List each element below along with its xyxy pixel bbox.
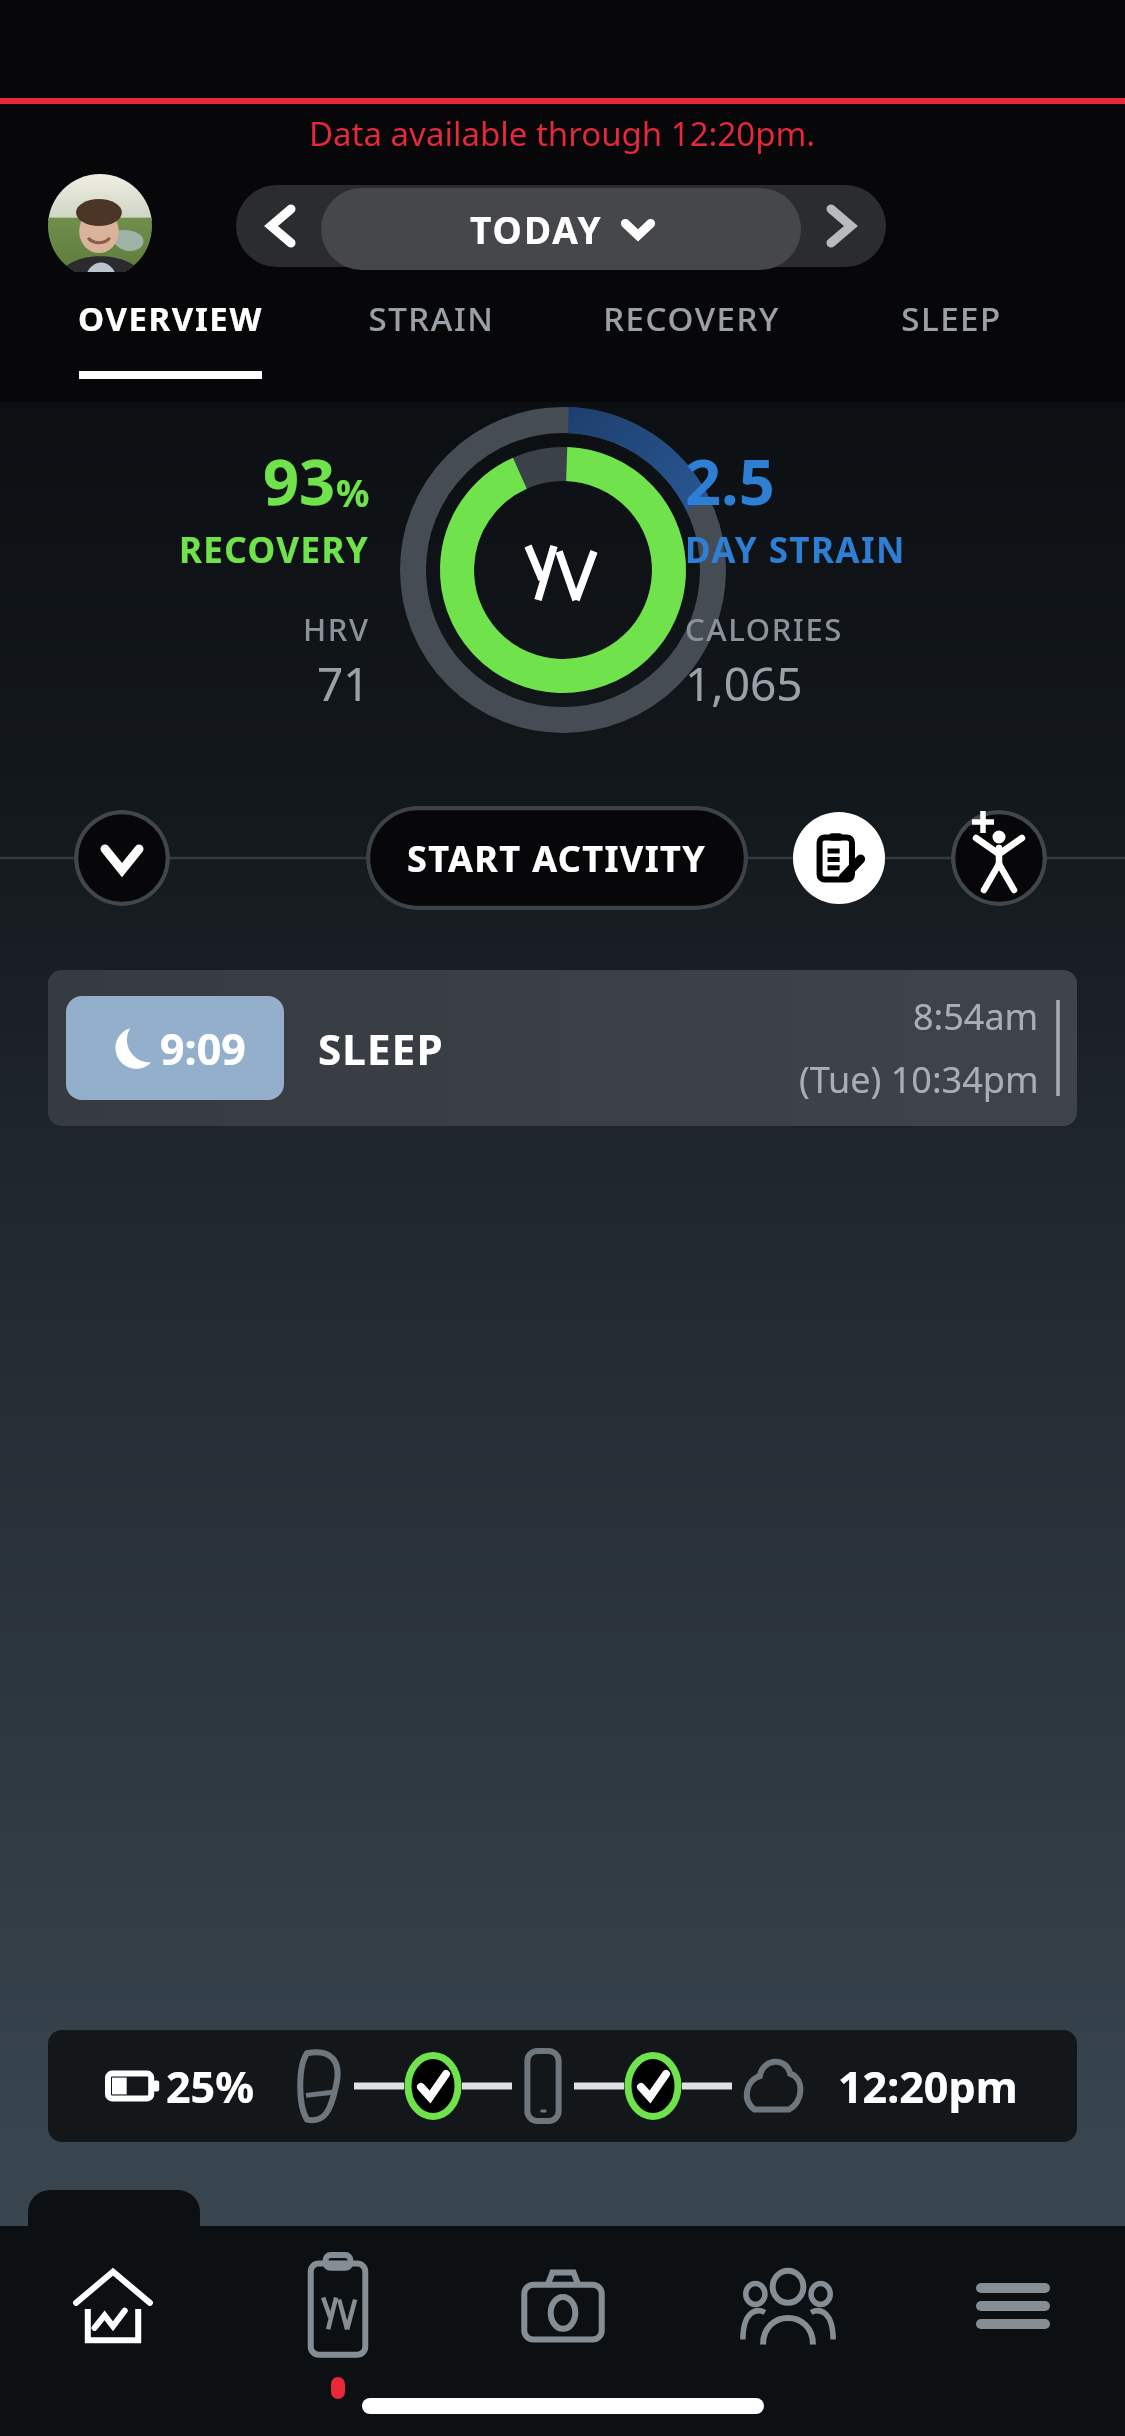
button[interactable]: 2.5 — [685, 438, 1065, 715]
staticText: % — [336, 467, 370, 517]
button[interactable]: 25% — [48, 2030, 1077, 2142]
button[interactable]: RECOVERY — [551, 272, 831, 402]
staticText: OVERVIEW — [78, 296, 263, 341]
staticText: RECOVERY — [179, 526, 370, 574]
button[interactable]: Home — [0, 2226, 225, 2386]
button[interactable]: 9:09 — [48, 970, 1077, 1126]
staticText: 9:09 — [160, 1019, 246, 1078]
button[interactable]: Next day — [796, 185, 886, 267]
button[interactable]: Add activity — [951, 810, 1047, 906]
staticText: 25% — [166, 2057, 254, 2116]
button[interactable]: Journal — [225, 2226, 450, 2386]
button[interactable]: Profile — [48, 174, 152, 278]
staticText: START ACTIVITY — [407, 834, 707, 883]
button[interactable]: OVERVIEW — [30, 272, 310, 402]
staticText: Data available through 12:20pm. — [309, 111, 816, 156]
button[interactable]: 93 — [0, 438, 370, 715]
staticText: 93 — [263, 438, 336, 524]
staticText: TODAY — [470, 204, 603, 254]
staticText: 1,065 — [685, 652, 803, 715]
button[interactable]: Journal — [793, 812, 885, 904]
button[interactable]: TODAY — [321, 188, 801, 270]
staticText: SLEEP — [901, 296, 1002, 341]
staticText: 8:54am — [913, 992, 1039, 1041]
staticText: (Tue) 10:34pm — [799, 1055, 1039, 1104]
staticText: RECOVERY — [603, 296, 780, 341]
staticText: SLEEP — [318, 1020, 444, 1077]
button[interactable]: Previous day — [236, 185, 326, 267]
button[interactable]: START ACTIVITY — [366, 806, 748, 910]
staticText: 2.5 — [685, 438, 775, 524]
button[interactable]: Teams — [675, 2226, 900, 2386]
button[interactable]: Menu — [900, 2226, 1125, 2386]
staticText: STRAIN — [368, 296, 495, 341]
button[interactable]: Recovery and strain gauge — [398, 405, 728, 735]
staticText: DAY STRAIN — [685, 526, 906, 574]
button[interactable]: STRAIN — [291, 272, 571, 402]
button[interactable]: Expand — [74, 810, 170, 906]
button[interactable]: Camera — [450, 2226, 675, 2386]
button[interactable]: SLEEP — [811, 272, 1091, 402]
staticText: 12:20pm — [838, 2057, 1018, 2116]
staticText: CALORIES — [685, 608, 843, 650]
staticText: HRV — [303, 608, 370, 650]
staticText: 71 — [317, 652, 370, 715]
